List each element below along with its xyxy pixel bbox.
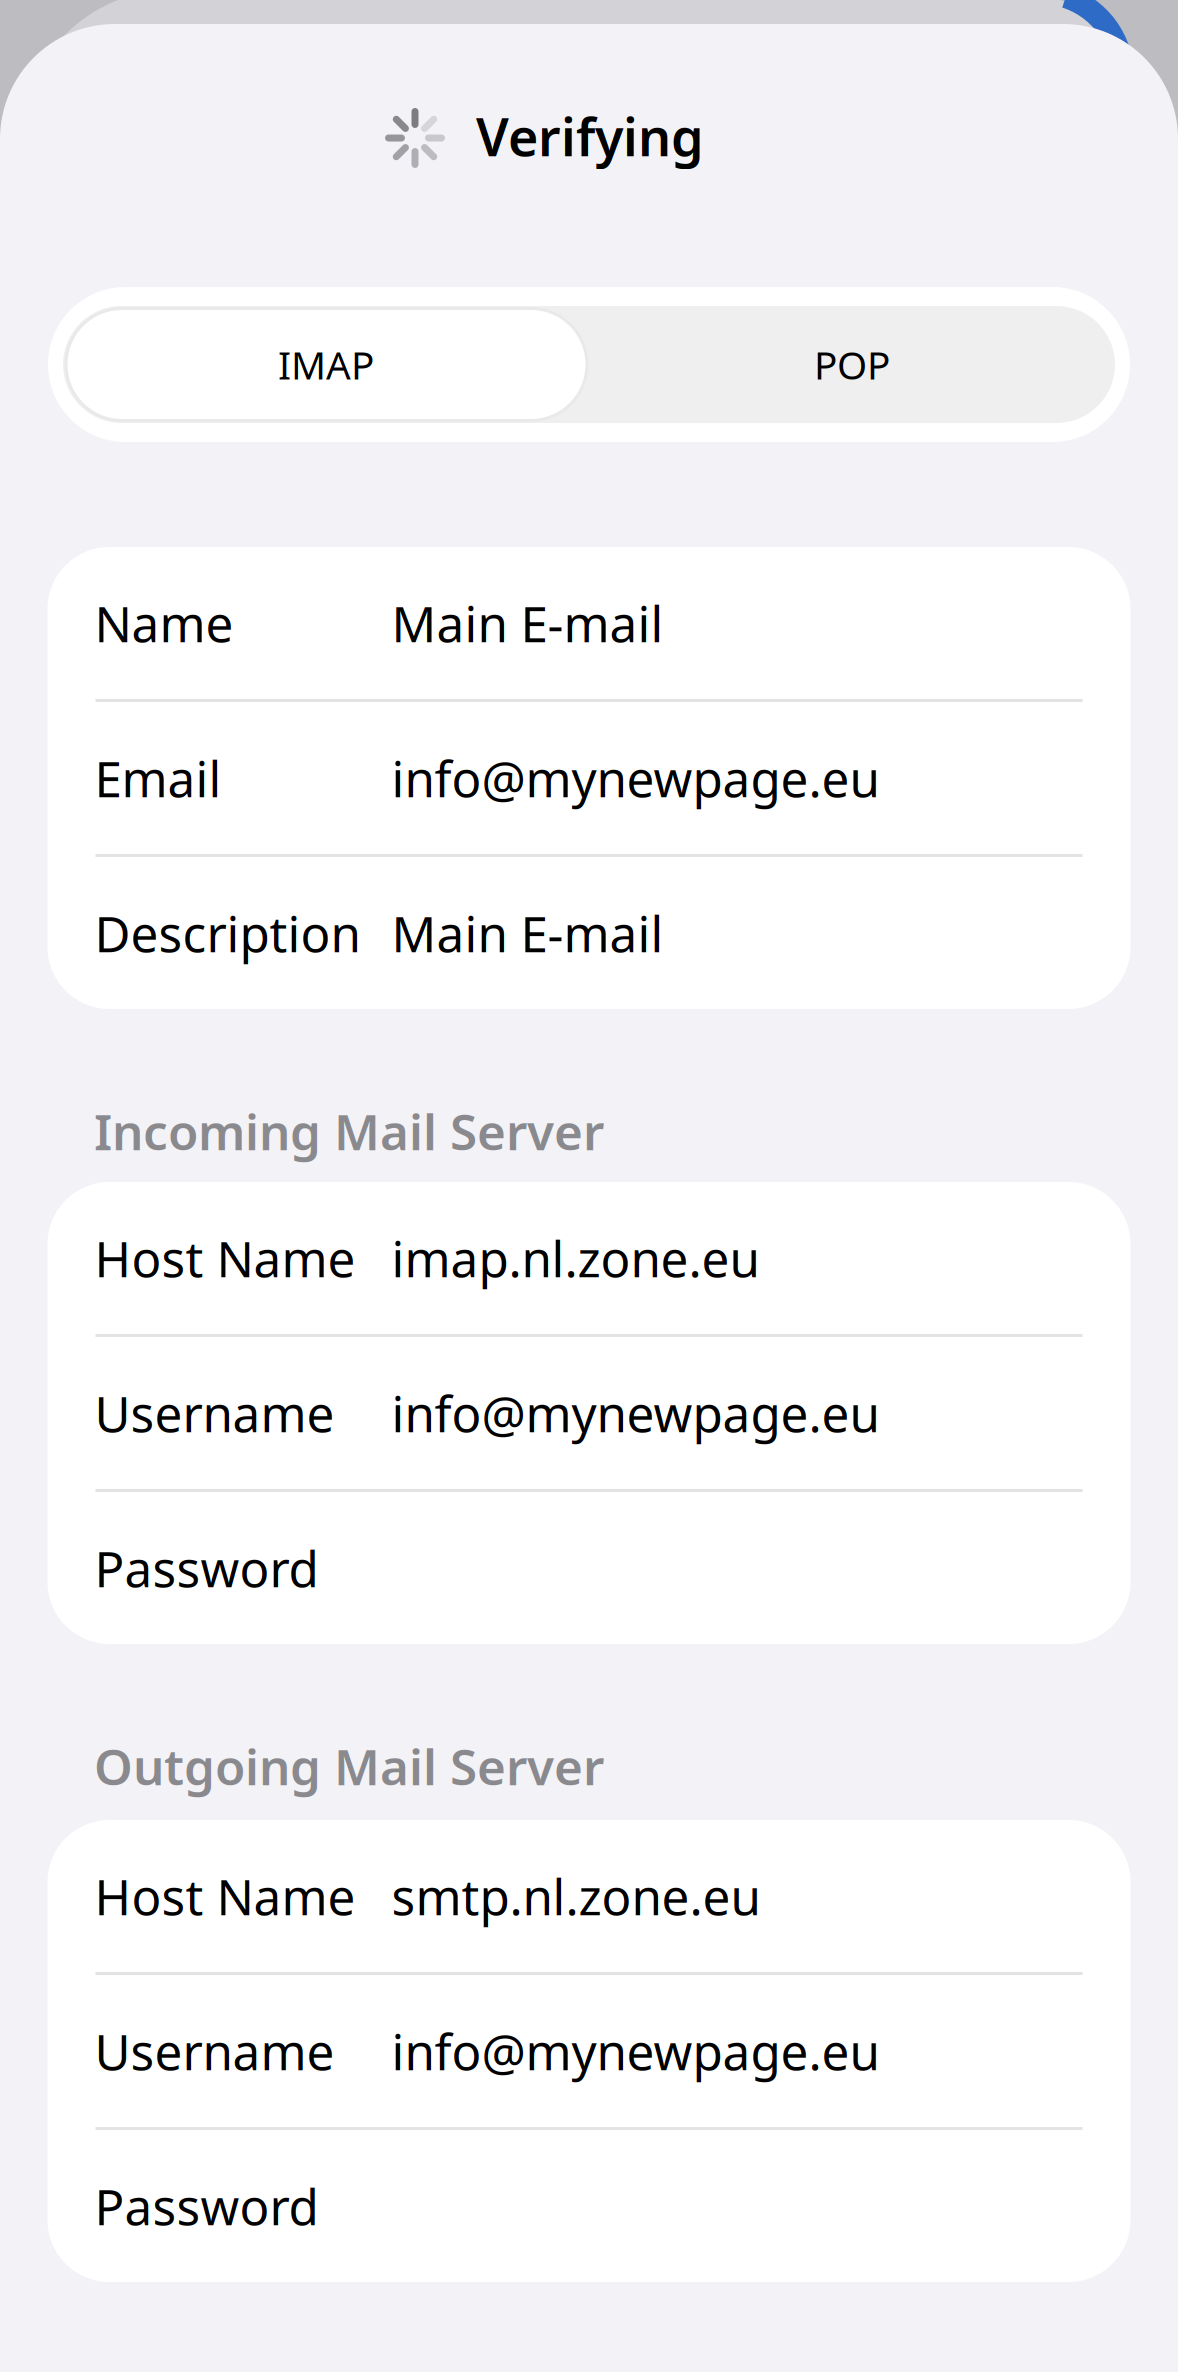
button[interactable]: POP xyxy=(589,306,1115,423)
staticText: Description xyxy=(94,900,360,966)
button[interactable]: Username xyxy=(47,1337,1130,1489)
button[interactable]: Host Name xyxy=(47,1820,1130,1972)
button[interactable]: Password xyxy=(47,2130,1130,2282)
staticText: Username xyxy=(94,2018,334,2084)
button[interactable]: Password xyxy=(47,1492,1130,1644)
staticText: Password xyxy=(94,1535,318,1601)
staticText: Host Name xyxy=(94,1225,355,1291)
staticText: imap.nl.zone.eu xyxy=(391,1225,759,1291)
staticText: smtp.nl.zone.eu xyxy=(391,1863,760,1929)
staticText: Email xyxy=(94,745,221,811)
staticText: POP xyxy=(814,339,890,390)
button[interactable]: Username xyxy=(47,1975,1130,2127)
staticText: info@mynewpage.eu xyxy=(391,745,879,811)
staticText: Incoming Mail Server xyxy=(94,1098,604,1164)
staticText: Main E-mail xyxy=(391,590,663,656)
staticText: IMAP xyxy=(278,339,374,390)
staticText: info@mynewpage.eu xyxy=(391,2018,879,2084)
button[interactable]: Host Name xyxy=(47,1182,1130,1334)
button[interactable]: IMAP xyxy=(63,306,589,423)
staticText: Name xyxy=(94,590,233,656)
staticText: info@mynewpage.eu xyxy=(391,1380,879,1446)
staticText: Username xyxy=(94,1380,334,1446)
staticText: Verifying xyxy=(476,101,704,171)
staticText: Password xyxy=(94,2173,318,2239)
staticText: Host Name xyxy=(94,1863,355,1929)
button[interactable]: Name xyxy=(47,547,1130,699)
button[interactable]: Email xyxy=(47,702,1130,854)
staticText: Main E-mail xyxy=(391,900,663,966)
staticText: Outgoing Mail Server xyxy=(94,1733,604,1799)
button[interactable]: Description xyxy=(47,857,1130,1009)
